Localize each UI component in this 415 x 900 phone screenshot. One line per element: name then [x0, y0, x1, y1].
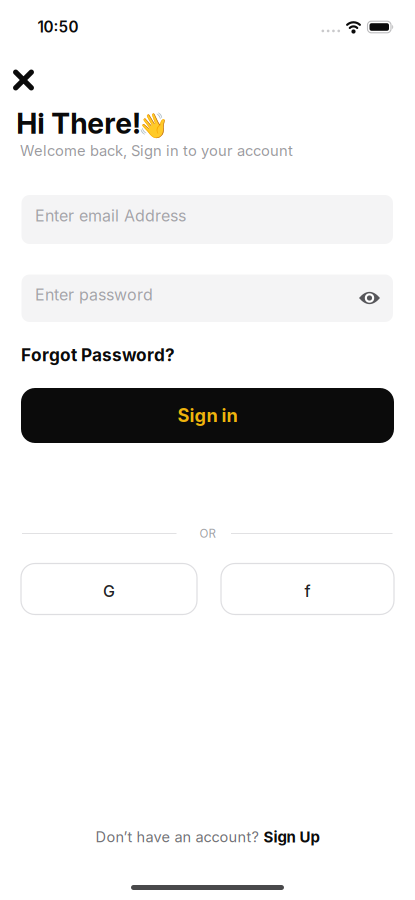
button[interactable]: Close	[13, 69, 34, 90]
staticText: Enter password	[35, 285, 153, 304]
button[interactable]: Sign in with Facebook	[221, 563, 394, 614]
staticText: Don’t have an account?	[95, 828, 258, 846]
button[interactable]: Don’t have an account?	[95, 828, 319, 846]
staticText: Hi There!	[16, 106, 141, 141]
button[interactable]: Sign in with Google	[21, 563, 197, 614]
button[interactable]: Show password	[359, 291, 380, 304]
button[interactable]: Forgot Password?	[21, 344, 175, 365]
staticText: 👋	[137, 111, 168, 140]
staticText: OR	[199, 526, 215, 540]
staticText: Sign Up	[263, 828, 319, 846]
staticText: Welcome back, Sign in to your account	[20, 142, 293, 159]
staticText: Enter email Address	[35, 206, 186, 225]
staticText: G	[103, 581, 115, 601]
staticText: 10:50	[37, 18, 78, 36]
button[interactable]: Sign in	[21, 388, 394, 443]
staticText: Forgot Password?	[21, 344, 175, 365]
staticText: f	[304, 581, 310, 601]
staticText: Sign in	[177, 404, 237, 426]
